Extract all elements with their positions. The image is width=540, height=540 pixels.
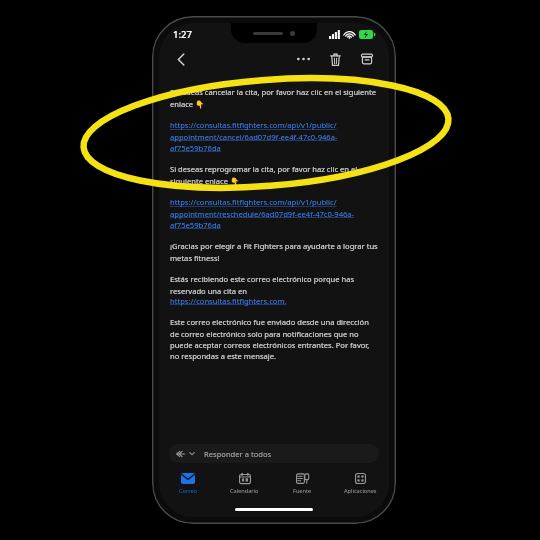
button[interactable]: Fuente <box>273 467 331 501</box>
button[interactable]: Aplicaciones <box>331 467 389 501</box>
staticText: Calendario <box>230 487 259 495</box>
button[interactable]: Archive <box>355 47 379 71</box>
button[interactable]: https://consultas.fitfighters.com/api/v1… <box>170 197 378 230</box>
button[interactable]: Responder a todos <box>169 444 379 463</box>
button[interactable]: More options <box>291 47 315 71</box>
button[interactable]: Correo <box>159 467 216 501</box>
staticText: Correo <box>179 487 197 495</box>
staticText: Responder a todos <box>204 449 272 459</box>
button[interactable]: Delete <box>323 47 347 71</box>
staticText: Este correo electrónico fue enviado desd… <box>170 317 378 361</box>
staticText: Fuente <box>293 487 312 495</box>
staticText: ¡Gracias por elegir a Fit Fighters para … <box>170 241 378 263</box>
button[interactable]: Back <box>169 47 193 71</box>
button[interactable]: Calendario <box>216 467 273 501</box>
button[interactable]: https://consultas.fitfighters.com. <box>170 296 287 306</box>
button[interactable]: https://consultas.fitfighters.com/api/v1… <box>170 120 378 153</box>
staticText: 1:27 <box>173 28 192 41</box>
staticText: Si deseas reprogramar la cita, por favor… <box>170 164 378 186</box>
staticText: Aplicaciones <box>344 487 377 495</box>
staticText: Estás recibiendo este correo electrónico… <box>170 274 378 296</box>
staticText: Si deseas cancelar la cita, por favor ha… <box>170 87 378 109</box>
